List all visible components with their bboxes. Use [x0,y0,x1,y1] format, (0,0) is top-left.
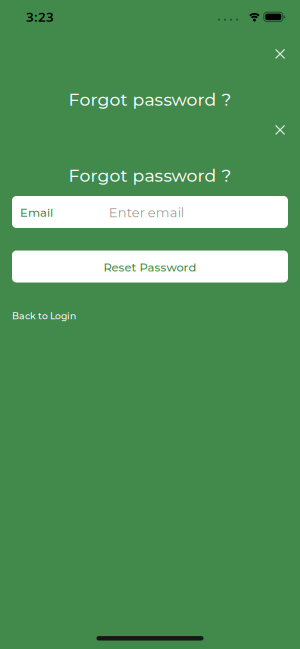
button[interactable]: Reset Password [12,250,288,282]
staticText: Email [20,206,53,220]
staticText: Forgot password ? [68,89,231,110]
button[interactable]: Close [272,122,288,138]
staticText: Enter email [109,205,184,220]
staticText: 3:23 [26,8,54,25]
staticText: Back to Login [12,310,76,322]
staticText: Forgot password ? [68,165,231,186]
staticText: Reset Password [103,260,196,274]
button[interactable]: Close [272,46,288,62]
button[interactable]: Enter email [12,196,288,228]
button[interactable]: Back to Login [12,310,76,322]
